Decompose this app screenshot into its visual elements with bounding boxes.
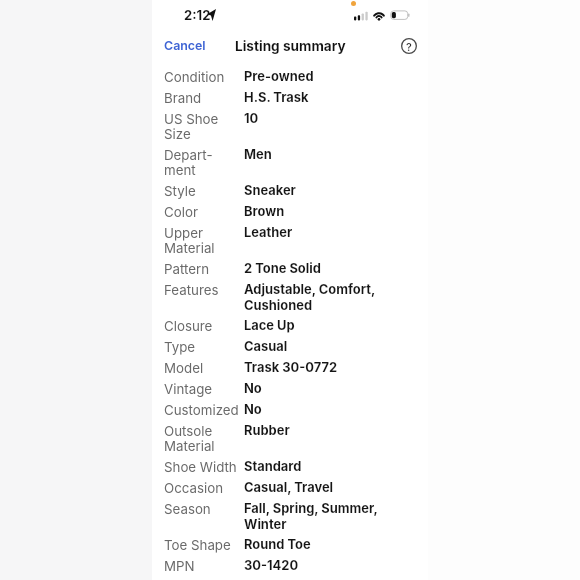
staticText: Fall, Spring, Summer, Winter (244, 501, 382, 532)
staticText: Sneaker (244, 183, 382, 199)
button[interactable]: Type (164, 339, 428, 360)
staticText: Rubber (244, 423, 382, 439)
staticText: Occasion (164, 480, 240, 496)
button[interactable]: Brand (164, 90, 428, 111)
staticText: Casual (244, 339, 382, 355)
staticText: Toe Shape (164, 537, 240, 553)
button[interactable]: Toe Shape (164, 537, 428, 558)
button[interactable]: Model (164, 360, 428, 381)
staticText: Listing summary (235, 38, 346, 54)
staticText: Depart- ment (164, 147, 240, 178)
staticText: Type (164, 339, 240, 355)
staticText: ? (406, 40, 412, 53)
button[interactable]: US Shoe Size (164, 111, 428, 147)
staticText: Model (164, 360, 240, 376)
staticText: Upper Material (164, 225, 240, 256)
button[interactable]: Features (164, 282, 428, 318)
staticText: Standard (244, 459, 382, 475)
staticText: Round Toe (244, 537, 382, 553)
staticText: Trask 30-0772 (244, 360, 382, 376)
staticText: Cancel (164, 38, 206, 53)
staticText: Color (164, 204, 240, 220)
staticText: MPN (164, 558, 240, 574)
button[interactable]: Pattern (164, 261, 428, 282)
button[interactable]: Depart- ment (164, 147, 428, 183)
staticText: Season (164, 501, 240, 517)
staticText: Casual, Travel (244, 480, 382, 496)
staticText: Adjustable, Comfort, Cushioned (244, 282, 382, 313)
staticText: No (244, 381, 382, 397)
button[interactable]: Outsole Material (164, 423, 428, 459)
staticText: Pattern (164, 261, 240, 277)
staticText: Pre-owned (244, 69, 382, 85)
staticText: Features (164, 282, 240, 298)
staticText: Outsole Material (164, 423, 240, 454)
staticText: Closure (164, 318, 240, 334)
button[interactable]: MPN (164, 558, 428, 579)
staticText: Style (164, 183, 240, 199)
button[interactable]: Cancel (158, 30, 212, 53)
button[interactable]: Color (164, 204, 428, 225)
staticText: 10 (244, 111, 382, 127)
staticText: Brand (164, 90, 240, 106)
staticText: 2 Tone Solid (244, 261, 382, 277)
button[interactable]: Vintage (164, 381, 428, 402)
staticText: US Shoe Size (164, 111, 240, 142)
button[interactable]: Customized (164, 402, 428, 423)
button[interactable]: Help (397, 34, 421, 58)
staticText: Brown (244, 204, 382, 220)
staticText: Customized (164, 402, 240, 418)
staticText: Lace Up (244, 318, 382, 334)
button[interactable]: Upper Material (164, 225, 428, 261)
staticText: Men (244, 147, 382, 163)
button[interactable]: Shoe Width (164, 459, 428, 480)
staticText: 30-1420 (244, 558, 382, 574)
staticText: Leather (244, 225, 382, 241)
staticText: Condition (164, 69, 240, 85)
button[interactable]: Closure (164, 318, 428, 339)
button[interactable]: Style (164, 183, 428, 204)
button[interactable]: Condition (164, 69, 428, 90)
staticText: No (244, 402, 382, 418)
button[interactable]: Season (164, 501, 428, 537)
staticText: Shoe Width (164, 459, 240, 475)
button[interactable]: Occasion (164, 480, 428, 501)
staticText: 2:12 (184, 7, 211, 23)
staticText: Vintage (164, 381, 240, 397)
staticText: H.S. Trask (244, 90, 382, 106)
